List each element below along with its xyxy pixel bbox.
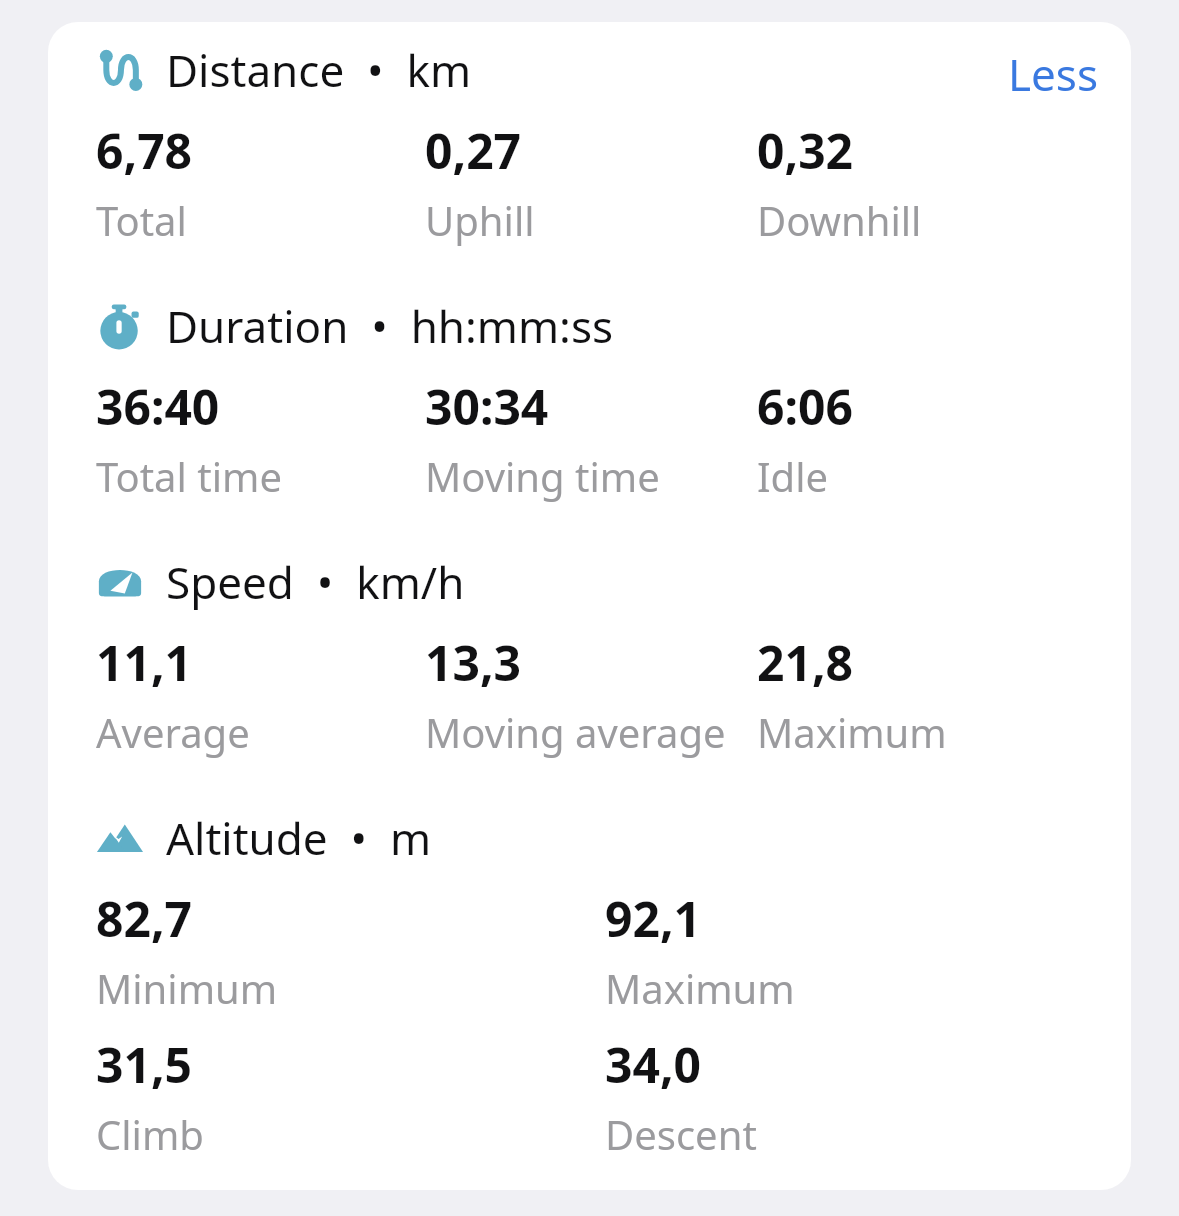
staticText: 82,7 [96,886,193,951]
staticText: Moving time [425,449,660,503]
staticText: Maximum [605,961,795,1015]
staticText: Speed • km/h [166,552,465,612]
staticText: 21,8 [757,630,854,695]
other: Distance [96,46,144,94]
staticText: 0,27 [425,118,522,183]
staticText: Altitude • m [166,808,432,868]
staticText: Maximum [757,705,947,759]
staticText: 13,3 [425,630,522,695]
staticText: Total time [96,449,282,503]
staticText: 0,32 [757,118,854,183]
staticText: 31,5 [96,1032,193,1097]
staticText: 30:34 [425,374,549,439]
other: Duration [96,302,144,350]
staticText: Moving average [425,705,726,759]
staticText: Duration • hh:mm:ss [166,296,614,356]
staticText: 92,1 [605,886,702,951]
staticText: Less [1008,44,1099,96]
staticText: 6,78 [96,118,193,183]
staticText: Idle [757,449,829,503]
staticText: Uphill [425,193,535,247]
staticText: 11,1 [96,630,193,695]
other: Speed [96,558,144,606]
other: Altitude [96,814,144,862]
staticText: Minimum [96,961,278,1015]
staticText: 6:06 [757,374,853,439]
staticText: Total [96,193,187,247]
staticText: Descent [605,1107,757,1161]
staticText: 36:40 [96,374,220,439]
button[interactable]: Less [1002,40,1105,100]
staticText: Downhill [757,193,922,247]
staticText: Average [96,705,250,759]
staticText: 34,0 [605,1032,702,1097]
staticText: Climb [96,1107,204,1161]
staticText: Distance • km [166,40,472,100]
